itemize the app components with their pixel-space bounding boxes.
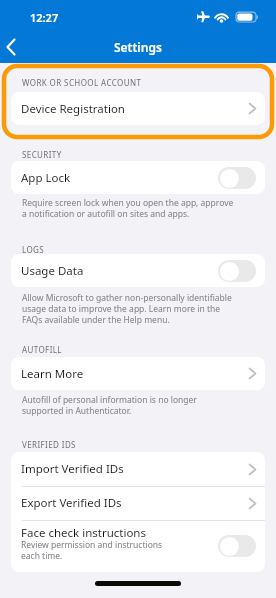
staticText: WORK OR SCHOOL ACCOUNT: [22, 77, 142, 88]
staticText: Autofill of personal information is no l…: [22, 394, 197, 416]
button[interactable]: Export Verified IDs: [11, 486, 265, 520]
button[interactable]: Learn More: [11, 357, 265, 390]
staticText: Require screen lock when you open the ap…: [22, 197, 234, 219]
staticText: VERIFIED IDS: [22, 439, 76, 450]
button[interactable]: App Lock: [11, 161, 265, 194]
staticText: Allow Microsoft to gather non-personally…: [22, 292, 232, 325]
staticText: Export Verified IDs: [21, 495, 122, 511]
staticText: Face check instructions: [21, 525, 146, 541]
button[interactable]: Device Registration: [11, 92, 265, 125]
button[interactable]: [4, 38, 20, 56]
staticText: Usage Data: [21, 263, 84, 279]
staticText: Device Registration: [21, 101, 125, 117]
staticText: AUTOFILL: [22, 344, 62, 355]
button[interactable]: Usage Data: [11, 254, 265, 287]
staticText: Settings: [114, 39, 162, 55]
staticText: 12:27: [30, 10, 59, 25]
staticText: Learn More: [21, 366, 84, 382]
button[interactable]: [218, 535, 256, 557]
button[interactable]: Face check instructions: [11, 520, 265, 572]
button[interactable]: [218, 167, 256, 189]
button[interactable]: [218, 260, 256, 282]
staticText: Import Verified IDs: [21, 461, 124, 477]
staticText: App Lock: [21, 170, 71, 186]
staticText: Review permission and instructions each …: [21, 539, 163, 561]
staticText: SECURITY: [22, 149, 62, 160]
button[interactable]: Import Verified IDs: [11, 452, 265, 486]
staticText: LOGS: [22, 244, 45, 255]
